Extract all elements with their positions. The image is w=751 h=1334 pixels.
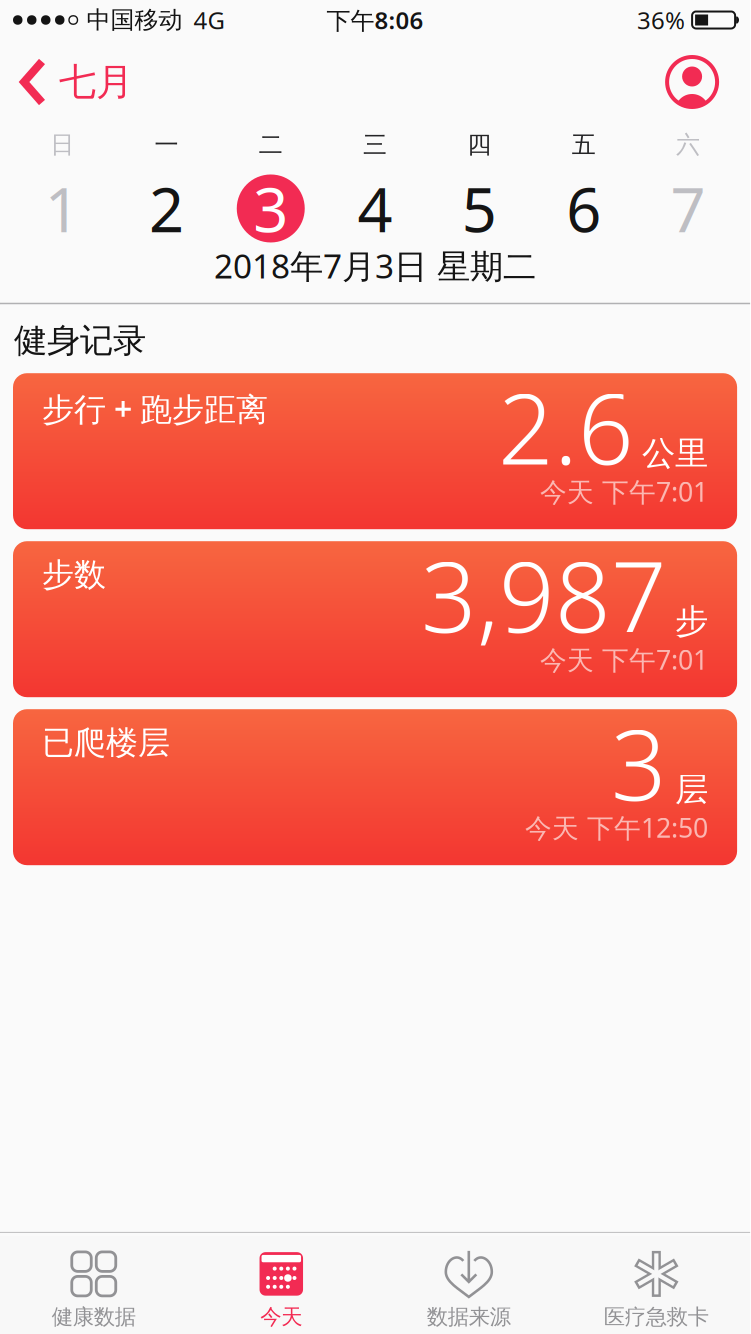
button[interactable]: 个人资料 [667,57,717,107]
staticText: 3,987 [421,530,667,659]
staticText: 今天 下午12:50 [525,810,708,845]
staticText: 2.6 [498,362,634,491]
staticText: 下午8:06 [326,4,423,36]
staticText: 4G [193,4,224,36]
staticText: 三 [363,130,387,159]
button[interactable]: 数据来源 [375,1252,562,1330]
staticText: 1 [45,168,80,249]
staticText: 2 [149,168,184,249]
button[interactable]: 4 [323,173,427,243]
staticText: 健康数据 [52,1304,136,1330]
button[interactable]: 5 [427,173,531,243]
button[interactable]: 医疗急救卡 [563,1252,750,1330]
button[interactable]: 1 [10,173,114,243]
button[interactable]: 6 [531,173,636,243]
staticText: 已爬楼层 [42,723,170,762]
staticText: 数据来源 [427,1304,511,1330]
staticText: 五 [572,130,596,159]
staticText: 健身记录 [14,320,146,361]
staticText: 3 [253,168,288,249]
staticText: 七月 [59,59,133,105]
button[interactable]: 已爬楼层 [13,709,737,865]
staticText: 中国移动 [86,5,182,35]
staticText: 5 [462,168,497,249]
button[interactable]: 返回七月 [20,59,133,105]
button[interactable]: 2 [114,173,219,243]
staticText: 4 [357,168,392,249]
staticText: 公里 [642,433,708,474]
staticText: 6 [566,168,601,249]
staticText: 今天 [260,1304,302,1330]
button[interactable]: 3 [219,173,323,243]
button[interactable]: 健康数据 [0,1252,187,1330]
staticText: 医疗急救卡 [604,1304,709,1330]
staticText: 2018年7月3日 星期二 [214,243,536,288]
staticText: 一 [154,130,178,159]
staticText: 7 [670,168,705,249]
staticText: 3 [611,698,667,827]
button[interactable]: 步数 [13,541,737,697]
staticText: 六 [676,130,700,159]
button[interactable]: 7 [636,173,740,243]
staticText: 今天 下午7:01 [540,474,708,509]
button[interactable]: 步行 + 跑步距离 [13,373,737,529]
staticText: 层 [675,769,708,810]
staticText: 二 [259,130,283,159]
staticText: 今天 下午7:01 [540,642,708,677]
staticText: 日 [50,130,74,159]
button[interactable]: 今天 [187,1252,375,1330]
staticText: 步行 + 跑步距离 [42,387,268,430]
staticText: 步 [675,601,708,642]
staticText: 四 [467,130,491,159]
staticText: 步数 [42,555,106,594]
staticText: 36% [637,4,685,36]
